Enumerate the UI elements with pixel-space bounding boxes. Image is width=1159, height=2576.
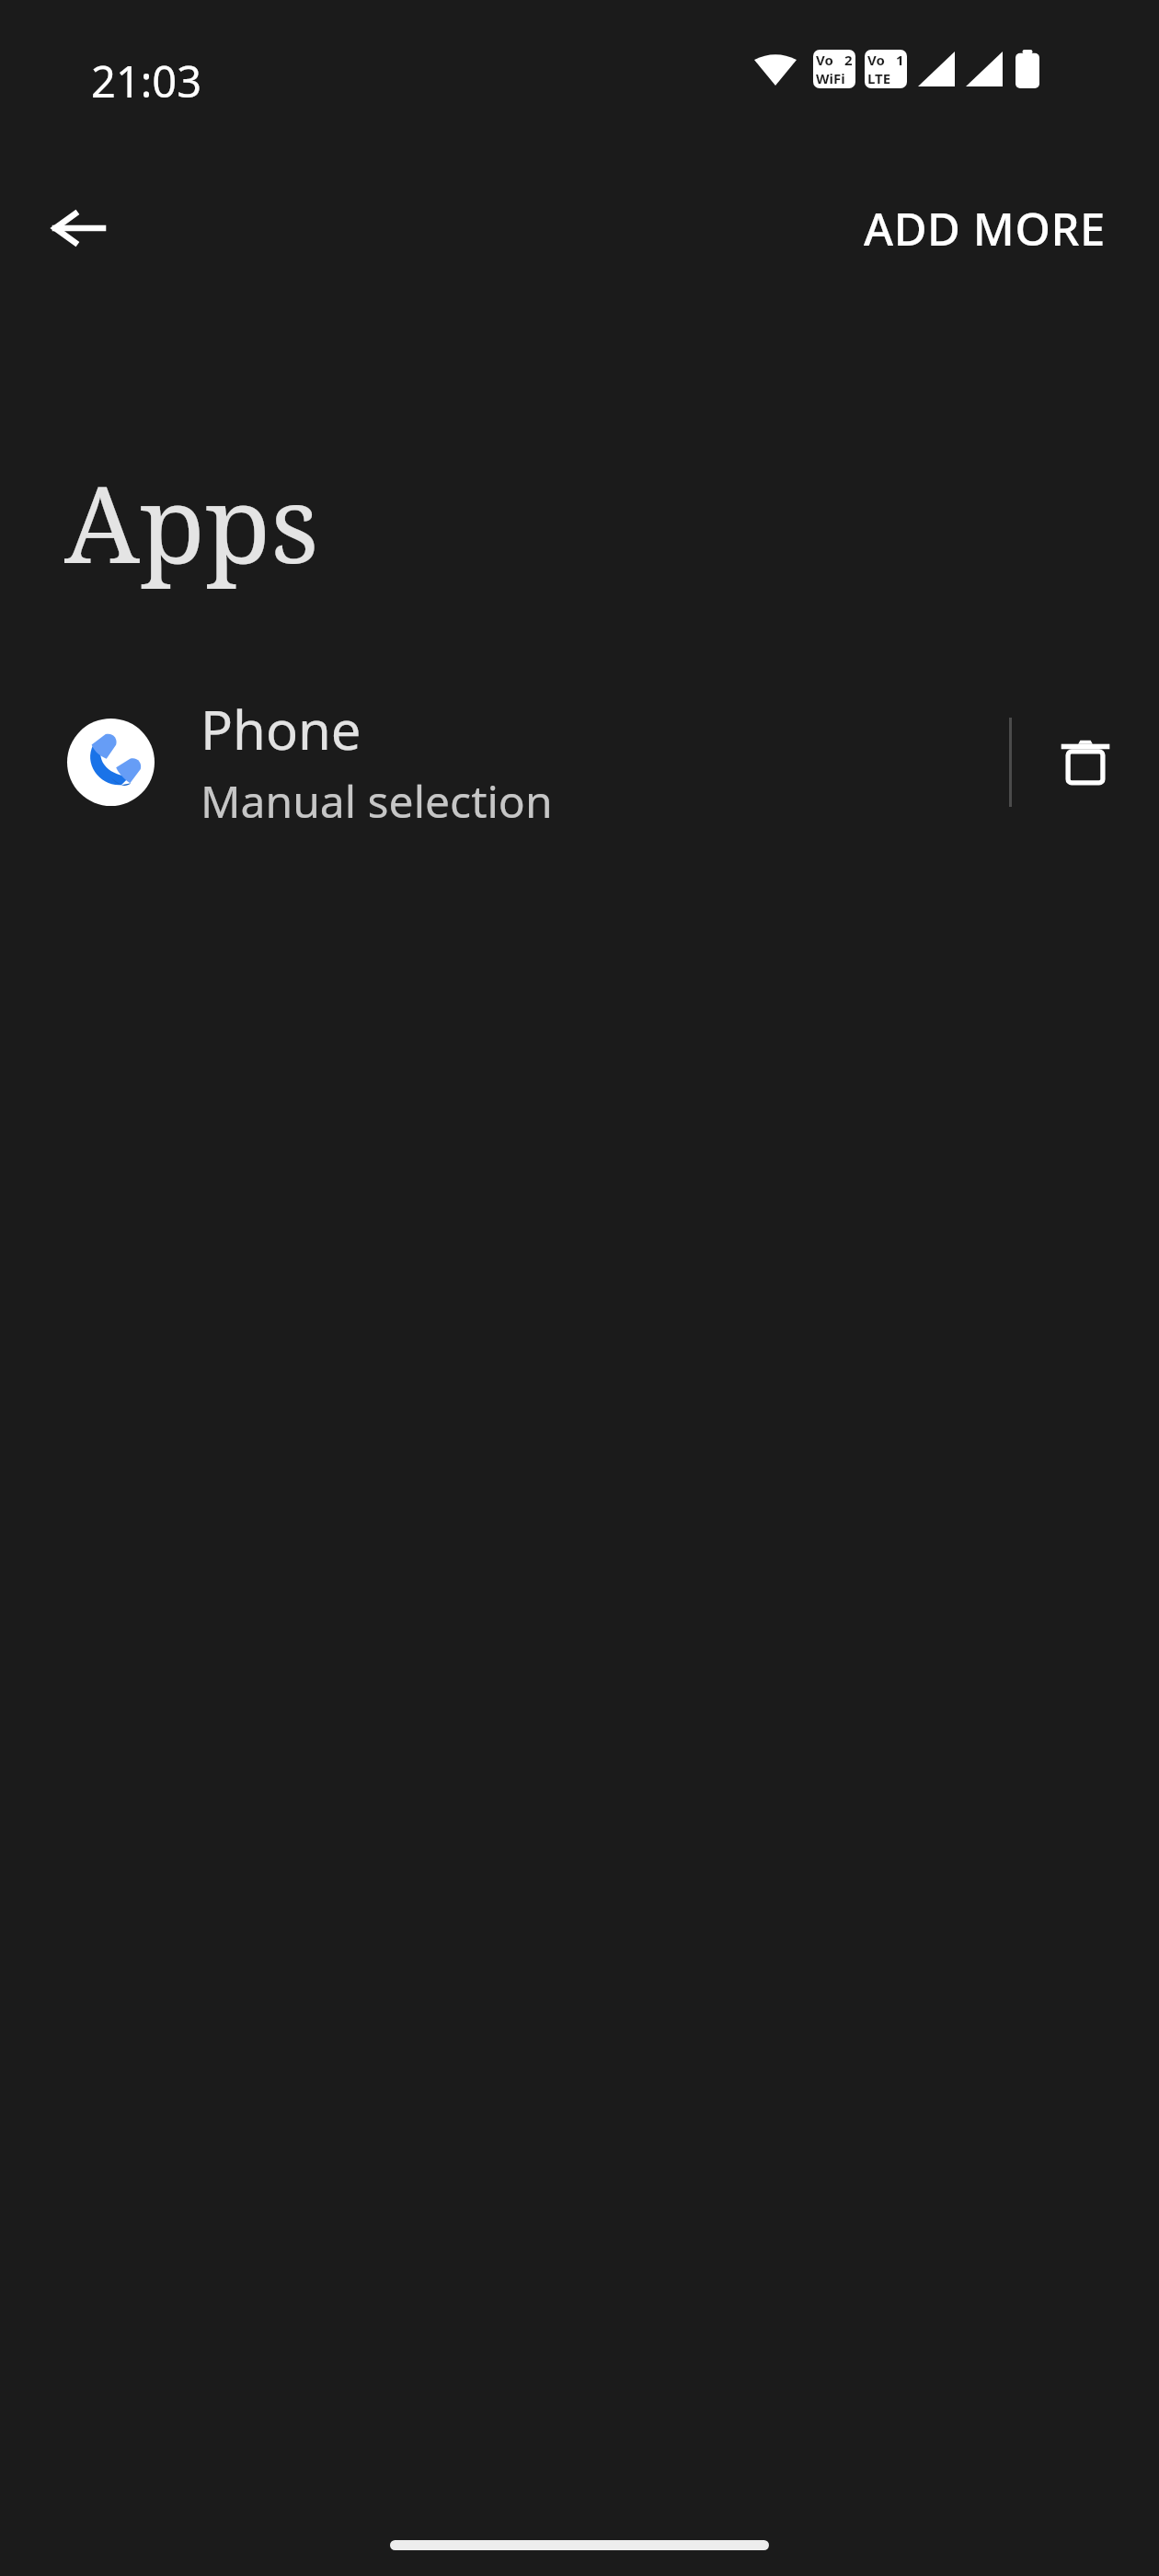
staticText: 21:03	[91, 52, 202, 110]
staticText: Apps	[64, 449, 319, 594]
button[interactable]: Phone	[0, 692, 1159, 832]
staticText: ADD MORE	[864, 198, 1106, 259]
staticText: Vo	[816, 51, 833, 69]
button[interactable]: ADD MORE	[842, 178, 1128, 280]
staticText: WiFi	[816, 69, 845, 87]
staticText: Manual selection	[201, 771, 553, 831]
staticText: Vo	[867, 51, 885, 69]
staticText: LTE	[867, 69, 891, 87]
staticText: 2	[844, 51, 853, 69]
button[interactable]: Delete	[1012, 692, 1159, 832]
staticText: Phone	[201, 693, 361, 765]
button[interactable]: Back	[18, 184, 138, 272]
staticText: 1	[896, 51, 904, 69]
